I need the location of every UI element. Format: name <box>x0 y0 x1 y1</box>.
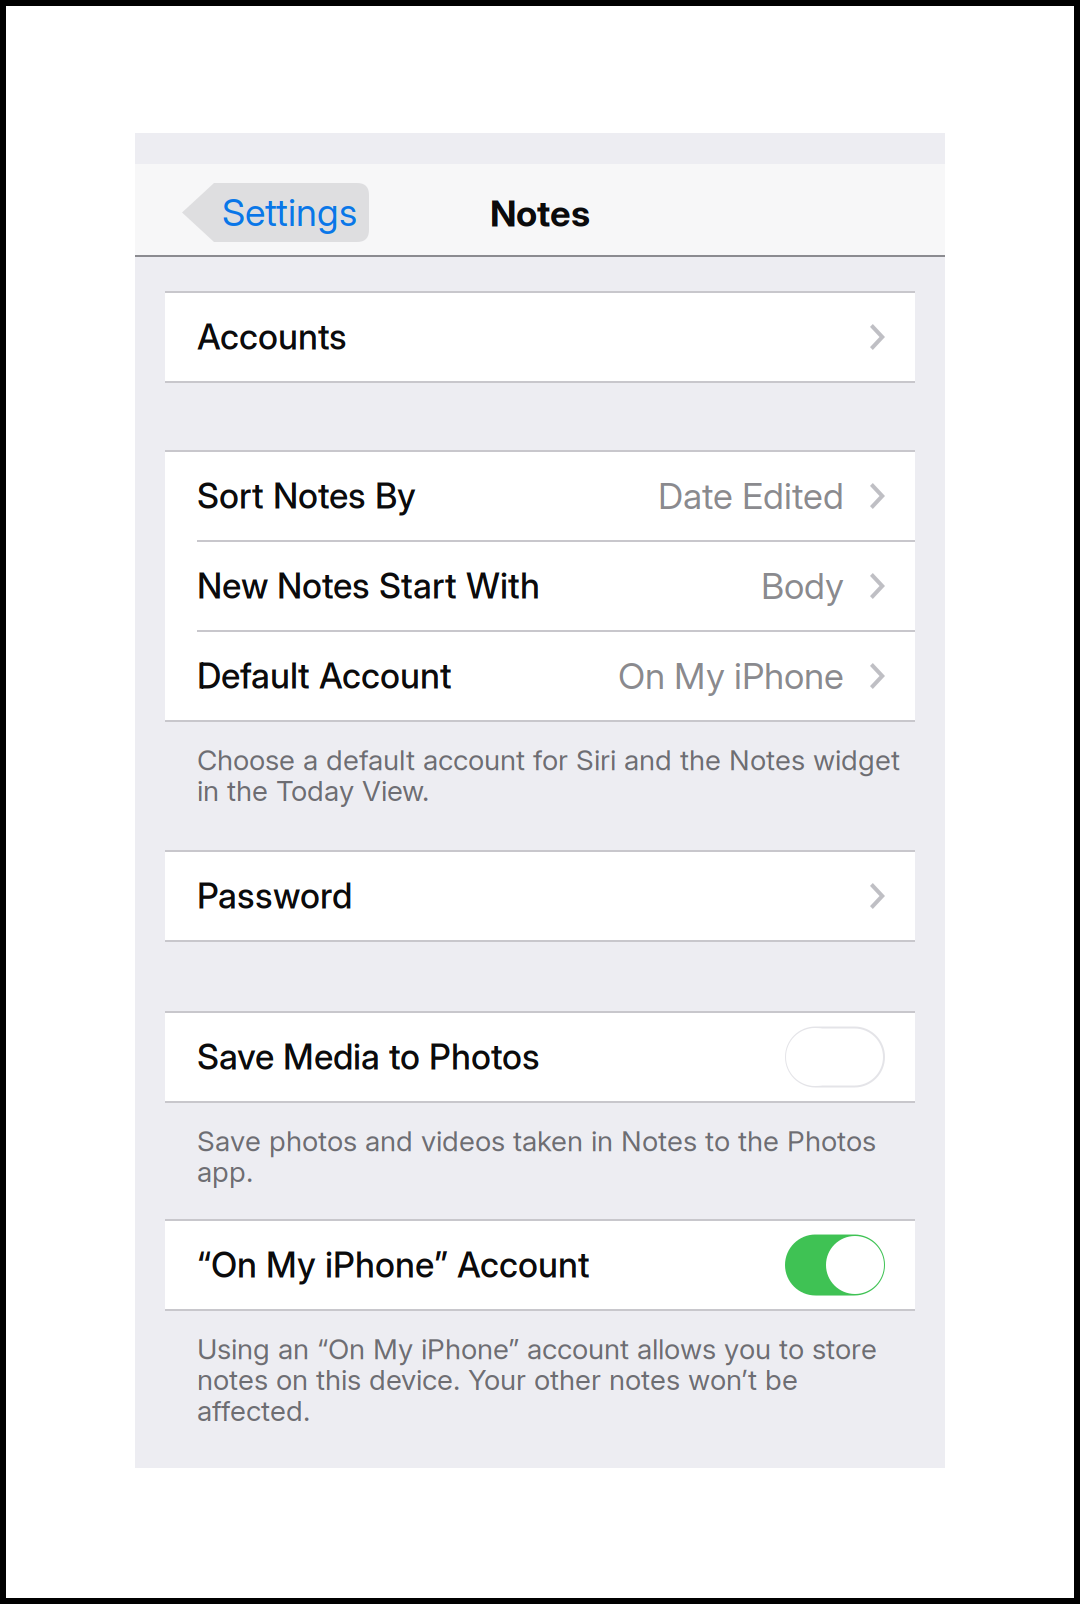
staticText: Settings <box>222 190 357 235</box>
staticText: Save Media to Photos <box>197 1036 540 1078</box>
staticText: “On My iPhone” Account <box>197 1244 590 1286</box>
button[interactable]: Back to Settings <box>182 180 369 239</box>
staticText: Using an “On My iPhone” account allows y… <box>197 1332 877 1428</box>
button[interactable]: Password <box>165 852 915 940</box>
staticText: Save photos and videos taken in Notes to… <box>197 1124 876 1189</box>
button[interactable]: Turn off <box>785 1234 885 1295</box>
staticText: Accounts <box>197 316 347 358</box>
staticText: New Notes Start With <box>197 565 540 607</box>
button[interactable]: Turn on <box>785 1026 885 1087</box>
staticText: Password <box>197 875 352 917</box>
staticText: On My iPhone <box>618 654 844 698</box>
staticText: Body <box>761 564 844 608</box>
button[interactable]: New Notes Start With <box>165 542 915 630</box>
staticText: Default Account <box>197 655 452 697</box>
staticText: Sort Notes By <box>197 475 416 517</box>
staticText: Date Edited <box>658 474 844 518</box>
button[interactable]: Accounts <box>165 293 915 381</box>
staticText: Choose a default account for Siri and th… <box>197 743 900 808</box>
staticText: Notes <box>490 192 590 235</box>
button[interactable]: Sort Notes By <box>165 452 915 540</box>
button[interactable]: Default Account <box>165 632 915 720</box>
